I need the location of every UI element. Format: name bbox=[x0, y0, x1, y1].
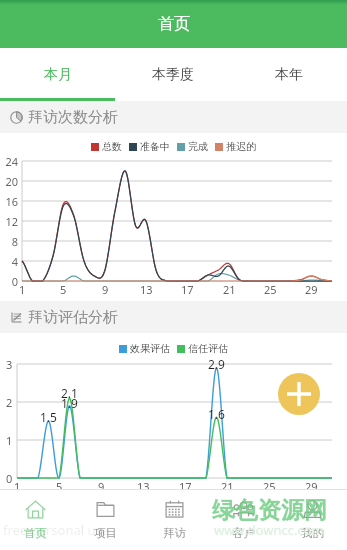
staticText: 13 bbox=[140, 282, 153, 297]
staticText: 推迟的 bbox=[226, 140, 256, 153]
button[interactable]: 项目 bbox=[70, 490, 140, 550]
staticText: 21 bbox=[223, 282, 236, 297]
staticText: 21 bbox=[221, 479, 234, 494]
staticText: 拜访 bbox=[163, 526, 186, 540]
staticText: 本季度 bbox=[152, 66, 194, 84]
staticText: 首页 bbox=[24, 526, 47, 540]
button[interactable]: 本季度 bbox=[115, 48, 231, 101]
staticText: 3 bbox=[6, 357, 13, 372]
staticText: 0 bbox=[11, 274, 18, 289]
staticText: 1 bbox=[14, 479, 21, 494]
staticText: 24 bbox=[5, 154, 18, 169]
staticText: 信任评估 bbox=[188, 342, 228, 355]
staticText: 我的 bbox=[301, 526, 324, 540]
staticText: 2 bbox=[6, 395, 13, 410]
staticText: 完成 bbox=[188, 140, 208, 153]
button[interactable]: 本月 bbox=[0, 48, 115, 101]
button[interactable]: 拜访 bbox=[140, 490, 209, 550]
button[interactable]: 我的 bbox=[278, 490, 347, 550]
staticText: 项目 bbox=[94, 526, 117, 540]
staticText: 本月 bbox=[44, 66, 72, 84]
staticText: 1 bbox=[19, 282, 26, 297]
staticText: 9 bbox=[102, 282, 109, 297]
staticText: 12 bbox=[5, 214, 18, 229]
staticText: 本年 bbox=[275, 66, 303, 84]
staticText: 1.6 bbox=[208, 406, 225, 422]
staticText: 1.9 bbox=[61, 395, 78, 411]
staticText: 拜访评估分析 bbox=[28, 308, 118, 327]
button[interactable]: 本年 bbox=[231, 48, 347, 101]
staticText: 4 bbox=[11, 254, 18, 269]
staticText: 25 bbox=[264, 282, 277, 297]
staticText: 17 bbox=[181, 282, 194, 297]
button[interactable]: 客户 bbox=[209, 490, 278, 550]
staticText: 2.9 bbox=[208, 356, 225, 372]
staticText: 0 bbox=[6, 471, 13, 486]
staticText: 20 bbox=[5, 174, 18, 189]
staticText: 5 bbox=[56, 479, 63, 494]
staticText: free personal use bbox=[3, 521, 110, 539]
staticText: 总数 bbox=[102, 140, 122, 153]
staticText: 拜访次数分析 bbox=[28, 108, 118, 127]
staticText: 1.5 bbox=[40, 409, 57, 425]
staticText: 客户 bbox=[232, 526, 255, 540]
staticText: 17 bbox=[179, 479, 192, 494]
staticText: 绿色资源网 bbox=[212, 496, 327, 525]
staticText: 25 bbox=[263, 479, 276, 494]
staticText: 29 bbox=[305, 282, 318, 297]
staticText: 2.1 bbox=[61, 385, 78, 401]
button[interactable]: 首页 bbox=[0, 490, 70, 550]
staticText: 29 bbox=[305, 479, 318, 494]
staticText: www.downcc.com bbox=[214, 521, 324, 539]
staticText: 9 bbox=[98, 479, 105, 494]
staticText: 13 bbox=[137, 479, 150, 494]
staticText: 效果评估 bbox=[130, 342, 170, 355]
staticText: 1 bbox=[6, 433, 13, 448]
staticText: 8 bbox=[11, 234, 18, 249]
staticText: 准备中 bbox=[140, 140, 170, 153]
button[interactable]: Add bbox=[278, 373, 320, 415]
staticText: 16 bbox=[5, 194, 18, 209]
staticText: 首页 bbox=[158, 14, 190, 34]
staticText: 5 bbox=[60, 282, 67, 297]
